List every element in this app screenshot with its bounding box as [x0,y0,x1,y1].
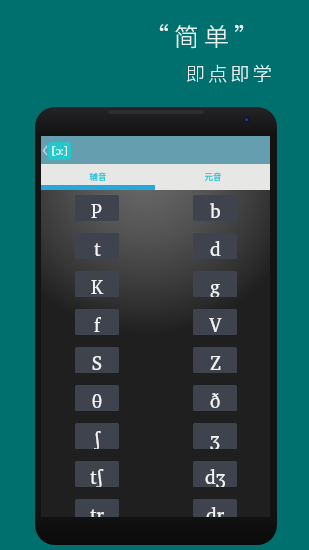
button[interactable]: dʒ [193,461,237,487]
button[interactable]: t [75,233,119,259]
staticText: V [209,309,222,335]
staticText: K [91,271,104,297]
button[interactable]: ð [193,385,237,411]
button[interactable]: ʒ [193,423,237,449]
staticText: S [92,347,102,373]
button[interactable]: Back [41,140,49,160]
staticText: dr [206,499,225,517]
button[interactable]: tr [75,499,119,517]
button[interactable]: [ɔ:] [48,142,71,160]
staticText: P [91,195,103,221]
staticText: ð [210,385,221,411]
staticText: Z [210,347,221,373]
staticText: d [210,233,221,259]
staticText: tr [90,499,104,517]
staticText: b [210,195,221,221]
staticText: g [210,271,220,297]
button[interactable]: f [75,309,119,335]
staticText: “简单” [144,17,265,53]
staticText: [ɔ:] [51,142,69,160]
button[interactable]: 辅音 [41,164,155,185]
button[interactable]: S [75,347,119,373]
button[interactable]: Z [193,347,237,373]
staticText: ʃ [94,423,101,449]
button[interactable]: ʃ [75,423,119,449]
button[interactable]: tʃ [75,461,119,487]
button[interactable]: V [193,309,237,335]
staticText: ʒ [210,423,220,449]
staticText: 辅音 [89,170,107,182]
button[interactable]: P [75,195,119,221]
button[interactable]: d [193,233,237,259]
button[interactable]: g [193,271,237,297]
staticText: dʒ [205,461,226,487]
staticText: 元音 [204,170,222,182]
button[interactable]: θ [75,385,119,411]
staticText: tʃ [90,461,104,487]
button[interactable]: b [193,195,237,221]
staticText: θ [92,385,102,411]
button[interactable]: dr [193,499,237,517]
staticText: f [94,309,101,335]
button[interactable]: K [75,271,119,297]
button[interactable]: 元音 [155,164,270,185]
staticText: t [94,233,101,259]
staticText: 即点即学 [186,59,275,87]
